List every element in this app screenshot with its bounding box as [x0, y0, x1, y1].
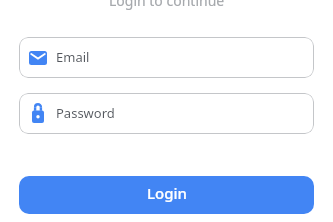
button[interactable]: Login: [19, 176, 314, 214]
button[interactable]: Email: [19, 37, 314, 78]
staticText: Email: [56, 48, 90, 66]
staticText: Password: [56, 104, 115, 122]
button[interactable]: Password: [19, 93, 314, 134]
staticText: Login to continue: [109, 0, 225, 10]
staticText: Login: [147, 183, 187, 203]
